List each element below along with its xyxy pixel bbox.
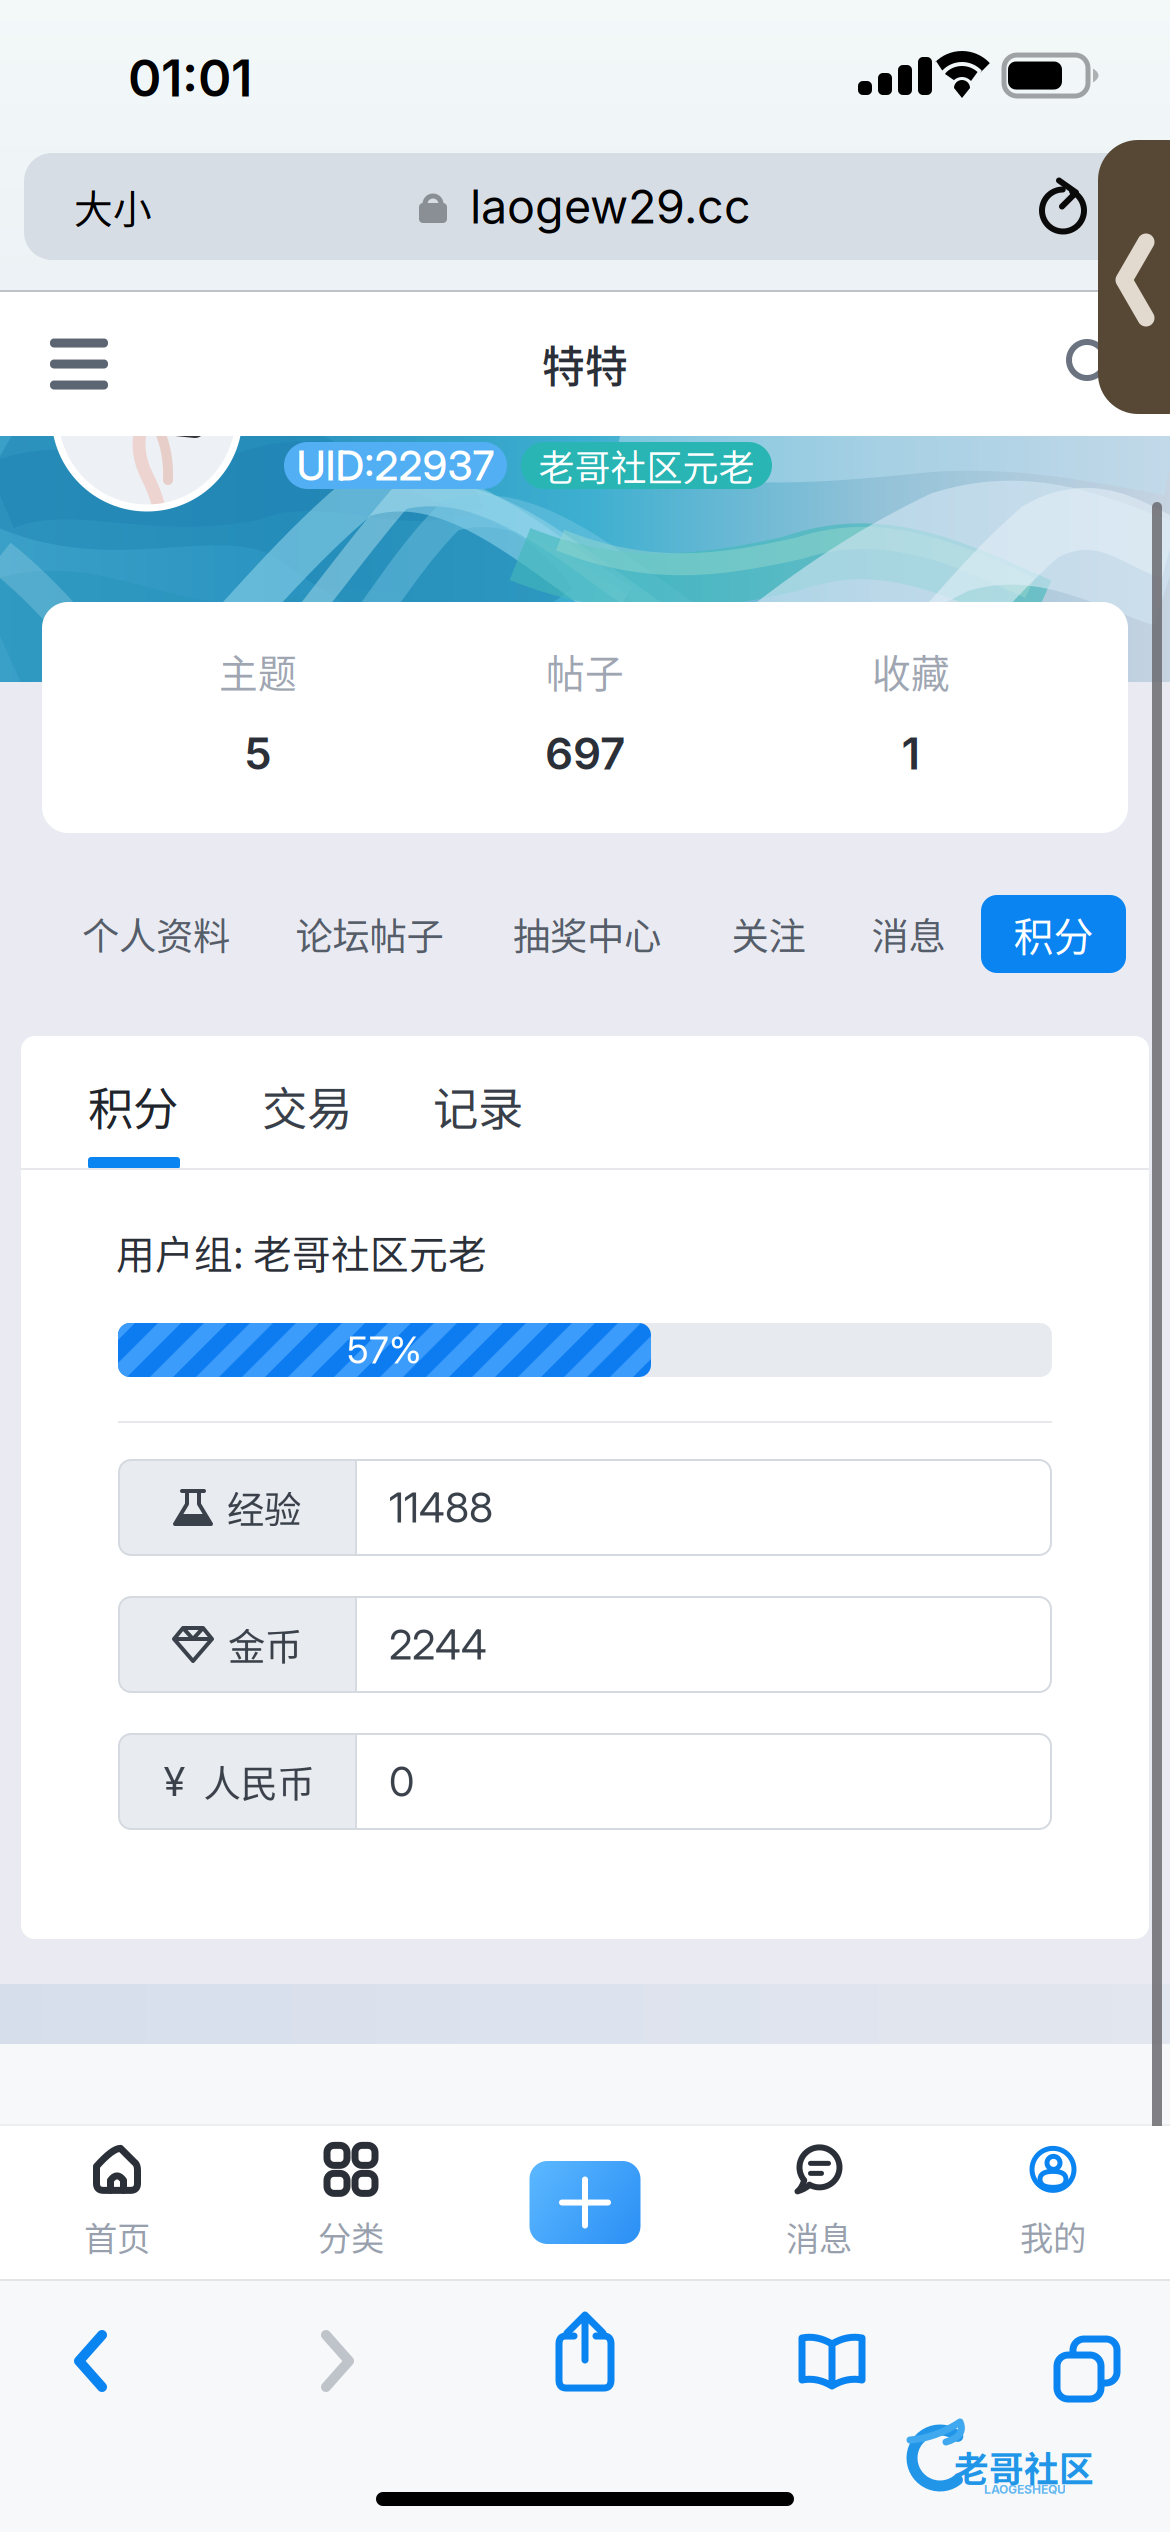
button[interactable]: 大小 <box>38 153 188 260</box>
staticText: 消息 <box>786 2212 852 2261</box>
staticText: 697 <box>545 727 625 780</box>
staticText: 分类 <box>318 2212 384 2260</box>
button[interactable]: 收藏 <box>748 596 1074 827</box>
button[interactable]: 消息 <box>869 895 948 973</box>
button[interactable]: 关注 <box>729 895 808 973</box>
button[interactable]: 分类 <box>234 2126 468 2279</box>
staticText: laogew29.cc <box>470 178 751 235</box>
staticText: 1 <box>901 727 920 780</box>
staticText: 老哥社区元老 <box>538 439 754 491</box>
staticText: ¥ <box>164 1757 185 1806</box>
staticText: 收藏 <box>872 643 950 699</box>
staticText: 2244 <box>389 1619 487 1669</box>
button[interactable]: 我的 <box>936 2126 1170 2279</box>
staticText: 帖子 <box>546 643 624 699</box>
button[interactable]: 首页 <box>0 2126 234 2279</box>
button[interactable]: 论坛帖子 <box>293 895 446 973</box>
staticText: 个人资料 <box>82 907 230 961</box>
staticText: 我的 <box>1020 2212 1086 2260</box>
button[interactable]: Menu <box>14 292 144 436</box>
staticText: 抽奖中心 <box>513 907 661 961</box>
staticText: 57% <box>347 1327 422 1373</box>
staticText: 记录 <box>433 1073 523 1139</box>
staticText: 5 <box>244 727 272 780</box>
staticText: 关注 <box>731 907 805 961</box>
staticText: 首页 <box>84 2212 150 2261</box>
button[interactable]: Forward <box>248 2306 428 2416</box>
staticText: 01:01 <box>128 47 252 109</box>
button[interactable]: New post <box>468 2126 702 2279</box>
button[interactable]: Back <box>1 2306 181 2416</box>
staticText: 特特 <box>542 333 628 395</box>
staticText: 论坛帖子 <box>295 907 443 961</box>
button[interactable]: 帖子 <box>422 596 748 827</box>
button[interactable]: Open side panel <box>1098 140 1170 414</box>
button[interactable]: 交易 <box>262 1063 354 1149</box>
staticText: UID:22937 <box>296 440 494 490</box>
button[interactable]: 积分 <box>981 895 1126 973</box>
button[interactable]: 主题 <box>95 596 421 827</box>
staticText: LAOGESHEQU <box>984 2482 1066 2496</box>
staticText: 积分 <box>88 1073 178 1139</box>
button[interactable]: Reload <box>1010 153 1120 260</box>
button[interactable]: Search <box>1026 292 1156 436</box>
staticText: 积分 <box>1013 905 1093 963</box>
button[interactable]: Share <box>495 2297 675 2407</box>
staticText: 大小 <box>74 178 152 234</box>
button[interactable]: Tabs <box>989 2306 1169 2416</box>
staticText: 0 <box>389 1756 414 1806</box>
button[interactable]: Bookmarks <box>742 2306 922 2416</box>
staticText: 消息 <box>871 907 945 961</box>
staticText: 老哥社区 <box>954 2442 1094 2492</box>
button[interactable]: 抽奖中心 <box>510 895 664 973</box>
staticText: 交易 <box>262 1073 352 1139</box>
staticText: 金币 <box>228 1617 302 1672</box>
staticText: 主题 <box>219 643 297 699</box>
staticText: 用户组: 老哥社区元老 <box>116 1224 487 1280</box>
staticText: 经验 <box>227 1480 301 1535</box>
staticText: 11488 <box>389 1482 493 1532</box>
button[interactable]: 个人资料 <box>81 895 231 973</box>
button[interactable]: 记录 <box>433 1063 525 1149</box>
staticText: 人民币 <box>203 1754 314 1809</box>
button[interactable]: 消息 <box>702 2126 936 2279</box>
button[interactable]: 积分 <box>88 1063 180 1149</box>
